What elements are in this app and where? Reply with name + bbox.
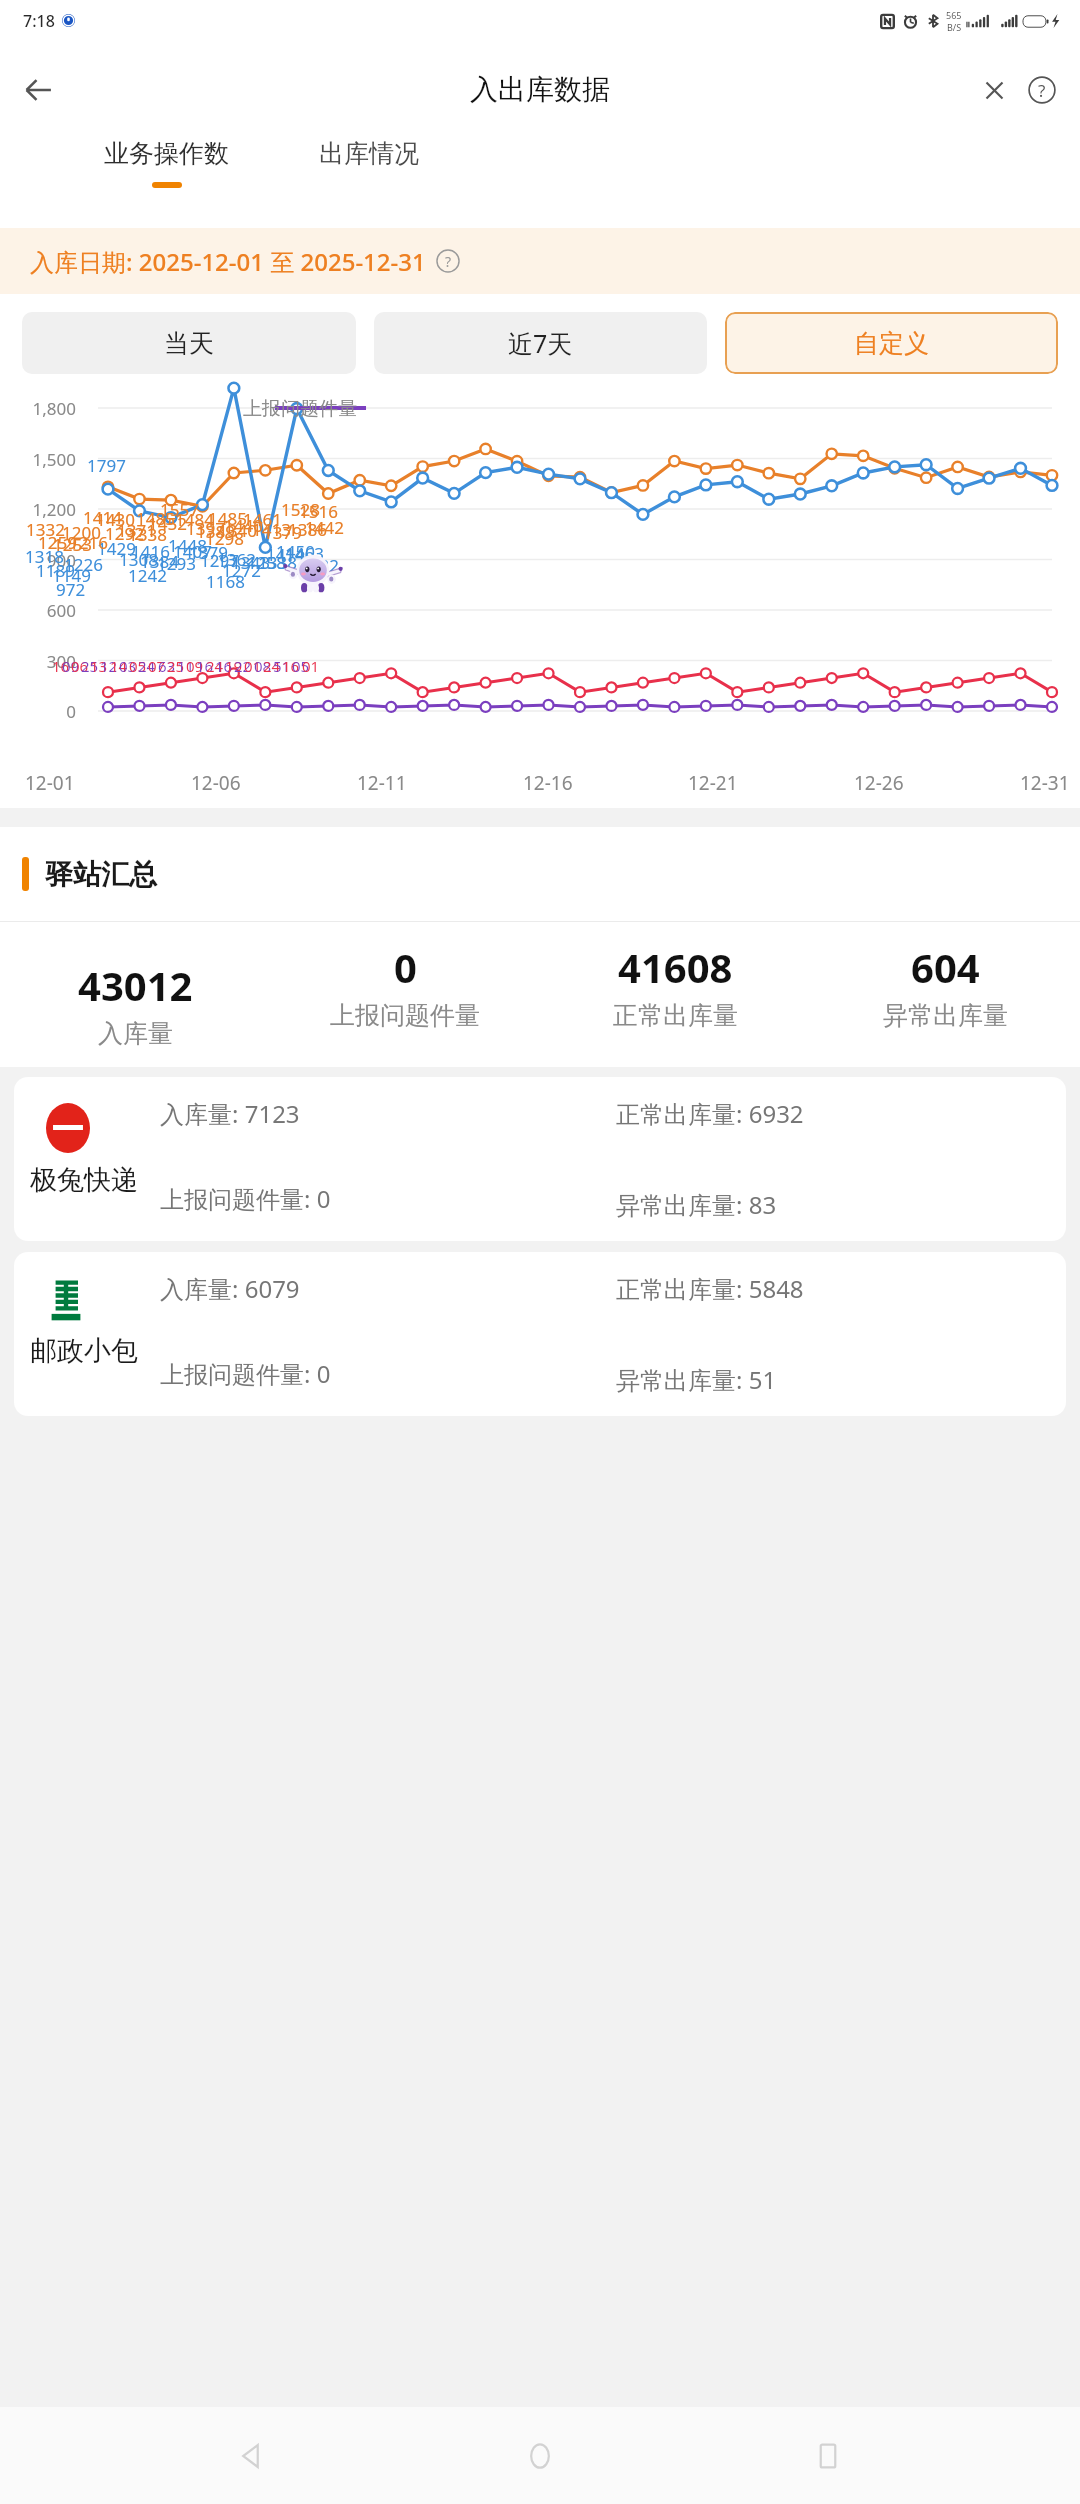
staticText: 1259 [38,531,77,554]
staticText: 极兔快递 [30,1163,138,1197]
button[interactable]: 近7天 [374,312,707,374]
staticText: 1226 [64,553,103,576]
staticText: 13 [90,656,108,676]
staticText: 1343 [231,551,270,574]
button[interactable]: 0 [270,936,540,1031]
button[interactable]: 返回 [216,2420,288,2492]
staticText: 异常出库量: 51 [616,1363,777,1396]
staticText: 1258 [247,551,286,574]
button[interactable]: 入库日期: 2025-12-01 至 2025-12-31 [0,228,1080,294]
button[interactable]: 出库情况 [311,138,427,169]
staticText: 1429 [97,537,136,560]
staticText: 1485 [208,507,247,530]
staticText: 1485 [136,507,175,530]
staticText: 05 [129,656,147,676]
staticText: 41608 [618,940,733,994]
staticText: 1414 [266,543,305,566]
staticText: 16 [282,656,300,676]
button[interactable]: 邮政小包 [14,1252,1066,1416]
staticText: 正常出库量 [613,1000,738,1031]
button[interactable]: 自定义 [725,312,1058,374]
staticText: 16 [215,656,233,676]
staticText: 上报问题件量: 0 [160,1182,331,1215]
staticText: 入库量: 7123 [160,1097,300,1130]
staticText: 24 [263,656,281,676]
staticText: 11 [177,656,195,676]
staticText: 565 [946,9,962,21]
staticText: 1322 [300,554,339,577]
button[interactable]: 41608 [540,936,810,1031]
staticText: 近7天 [508,326,573,360]
button[interactable]: 返回 [10,62,66,118]
staticText: 06 [71,656,89,676]
staticText: B/S [947,21,962,33]
staticText: 22 [234,656,252,676]
staticText: 1,800 [8,397,76,420]
staticText: 12-06 [191,770,241,796]
staticText: 1293 [157,552,196,575]
button[interactable]: 主页 [504,2420,576,2492]
staticText: 972 [56,578,86,601]
staticText: 1413 [252,518,291,541]
staticText: 09 [186,656,204,676]
staticText: 1407 [173,540,212,563]
staticText: 12 [100,656,118,676]
staticText: 300 [8,650,76,673]
staticText: 1386 [288,518,327,541]
staticText: 1,200 [8,498,76,521]
staticText: 25 [81,656,99,676]
staticText: 51 [273,656,291,676]
staticText: 7:18 [23,10,55,32]
staticText: 1450 [276,540,315,563]
staticText: 1338 [258,551,297,574]
button[interactable]: 关闭 [970,66,1018,114]
staticText: 0 [8,700,76,723]
staticText: 1440 [224,514,263,537]
staticText: 1463 [285,542,324,565]
staticText: 09 [62,656,80,676]
button[interactable]: 当天 [22,312,356,374]
staticText: 25 [167,656,185,676]
staticText: 异常出库量: 83 [616,1188,777,1221]
staticText: 1442 [305,516,344,539]
staticText: 1414 [83,506,122,529]
staticText: 1,500 [8,448,76,471]
staticText: 入出库数据 [470,72,610,107]
staticText: 16 [196,656,214,676]
button[interactable]: 业务操作数 [96,138,237,188]
staticText: 1168 [206,570,245,593]
staticText: 1379 [189,541,228,564]
staticText: 1253 [53,533,92,556]
staticText: 1528 [281,498,320,521]
staticText: 900 [8,549,76,572]
staticText: ? [445,252,452,271]
staticText: 1292 [105,522,144,545]
staticText: 驿站汇总 [45,857,157,892]
staticText: 12-31 [1020,770,1070,796]
staticText: 14 [110,656,128,676]
staticText: 12-21 [688,770,738,796]
staticText: 1149 [52,564,91,587]
staticText: 上报问题件量 [330,1000,480,1031]
staticText: 600 [8,599,76,622]
staticText: 出库情况 [319,138,419,169]
staticText: 0 [394,940,417,994]
staticText: 24 [138,656,156,676]
staticText: 1389 [196,520,235,543]
button[interactable]: 最近任务 [792,2420,864,2492]
button[interactable]: 极兔快递 [14,1077,1066,1241]
staticText: 1318 [25,545,64,568]
staticText: 正常出库量: 6932 [616,1097,804,1130]
staticText: 1452 [148,512,187,535]
staticText: 12-26 [854,770,904,796]
staticText: 05 [292,656,310,676]
staticText: 1397 [186,517,225,540]
button[interactable]: 604 [810,936,1080,1031]
button[interactable]: 43012 [0,936,270,1049]
staticText: 19 [225,656,243,676]
staticText: 1332 [26,518,65,541]
staticText: 1797 [87,454,126,477]
staticText: 邮政小包 [30,1334,138,1368]
button[interactable]: 帮助 [1018,66,1066,114]
staticText: 1430 [96,508,135,531]
